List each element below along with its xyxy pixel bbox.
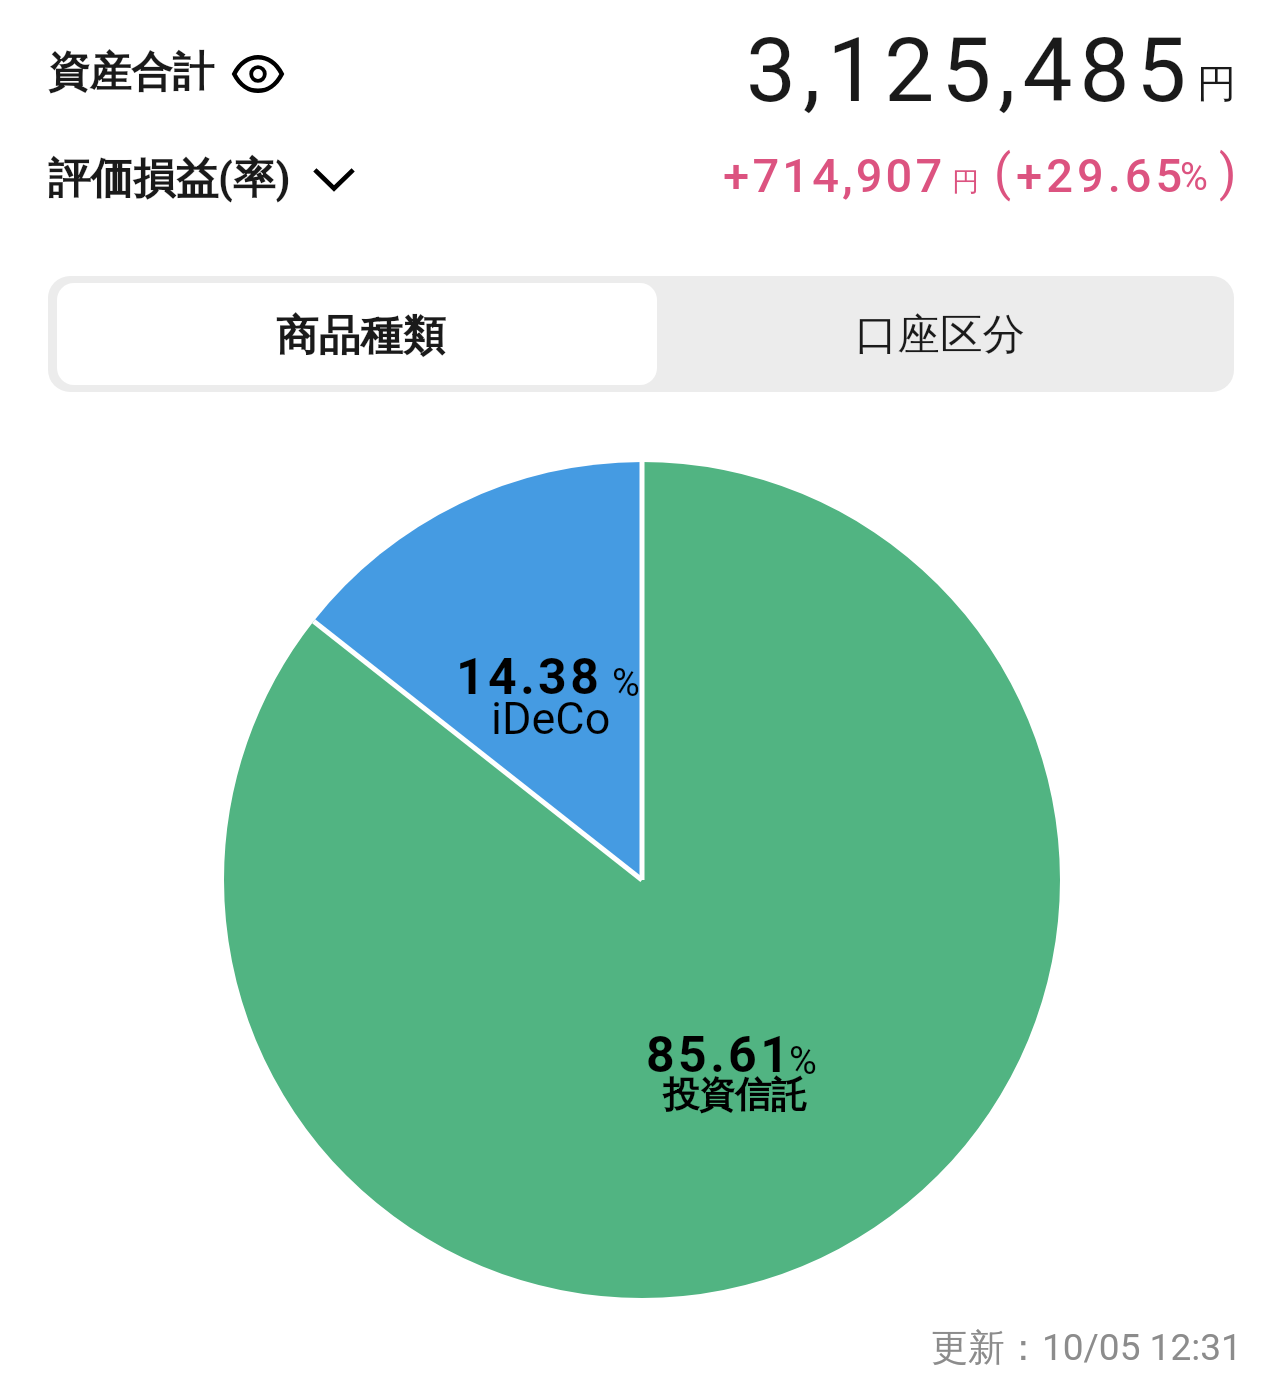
- button[interactable]: 商品種類: [57, 283, 657, 385]
- staticText: %: [789, 1039, 817, 1084]
- button[interactable]: 資産合計: [34, 36, 298, 108]
- staticText: +714,907: [723, 148, 946, 203]
- staticText: 商品種類: [276, 309, 446, 362]
- other: Expand profit and loss: [314, 169, 354, 191]
- staticText: ): [1219, 144, 1237, 203]
- staticText: 評価損益(率): [48, 152, 291, 206]
- staticText: 円: [1197, 59, 1236, 108]
- staticText: 更新：10/05 12:31: [931, 1324, 1242, 1371]
- staticText: 14.38: [456, 648, 603, 707]
- staticText: %: [612, 661, 640, 706]
- other: Toggle balance visibility: [232, 55, 284, 93]
- button[interactable]: 評価損益(率): [34, 143, 368, 215]
- button[interactable]: 口座区分: [666, 276, 1234, 392]
- staticText: 3,125,485: [746, 18, 1194, 122]
- staticText: 85.61: [646, 1026, 793, 1085]
- staticText: iDeCo: [491, 692, 611, 745]
- staticText: (: [994, 144, 1012, 203]
- staticText: 口座区分: [855, 308, 1025, 362]
- staticText: %: [1180, 155, 1208, 200]
- staticText: 投資信託: [663, 1072, 807, 1117]
- staticText: +29.65: [1016, 148, 1187, 203]
- staticText: 資産合計: [48, 46, 214, 98]
- staticText: 円: [952, 165, 979, 199]
